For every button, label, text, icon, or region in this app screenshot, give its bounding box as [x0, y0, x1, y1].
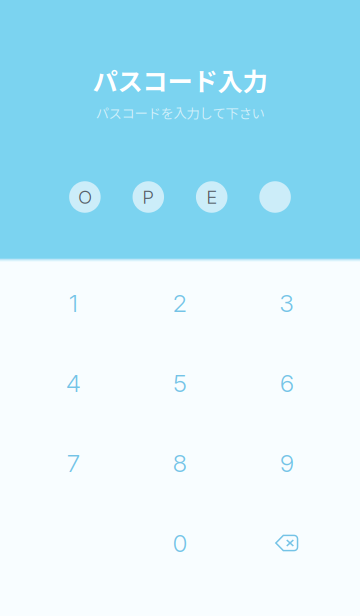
button[interactable]: Delete [234, 503, 340, 583]
staticText: 6 [280, 368, 294, 398]
staticText: 0 [172, 528, 187, 558]
button[interactable]: 1 [20, 263, 126, 343]
staticText: 5 [173, 368, 187, 398]
button[interactable]: 0 [127, 503, 233, 583]
staticText: E [206, 186, 217, 208]
button[interactable]: 6 [234, 343, 340, 423]
staticText: 3 [279, 288, 294, 318]
button[interactable]: 2 [127, 263, 233, 343]
staticText: 4 [66, 368, 81, 398]
button[interactable]: 5 [127, 343, 233, 423]
button[interactable]: 7 [20, 423, 126, 503]
staticText: 8 [172, 448, 187, 478]
button[interactable]: 3 [234, 263, 340, 343]
staticText: 1 [69, 288, 78, 318]
staticText: 2 [172, 288, 187, 318]
staticText: 9 [280, 448, 294, 478]
button[interactable]: 9 [234, 423, 340, 503]
staticText: P [142, 186, 154, 208]
staticText: パスコードを入力して下さい [95, 103, 264, 122]
staticText: 7 [67, 448, 80, 478]
staticText: O [78, 186, 92, 208]
button[interactable]: 8 [127, 423, 233, 503]
staticText: パスコード入力 [92, 62, 267, 98]
button[interactable]: 4 [20, 343, 126, 423]
